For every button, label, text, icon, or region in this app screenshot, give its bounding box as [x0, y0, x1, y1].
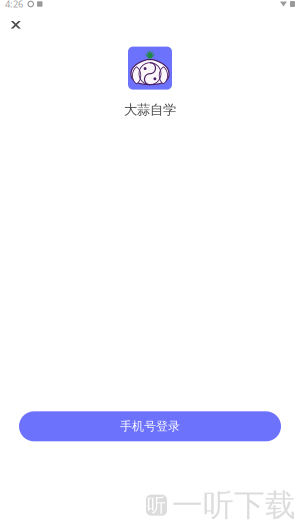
button[interactable]: 手机号登录: [19, 411, 281, 441]
staticText: 听: [147, 494, 166, 517]
staticText: 一听下载: [172, 486, 296, 524]
button[interactable]: Close: [5, 14, 27, 36]
staticText: 大蒜自学: [124, 102, 176, 118]
staticText: 手机号登录: [120, 419, 180, 434]
staticText: 4:26: [5, 0, 23, 10]
